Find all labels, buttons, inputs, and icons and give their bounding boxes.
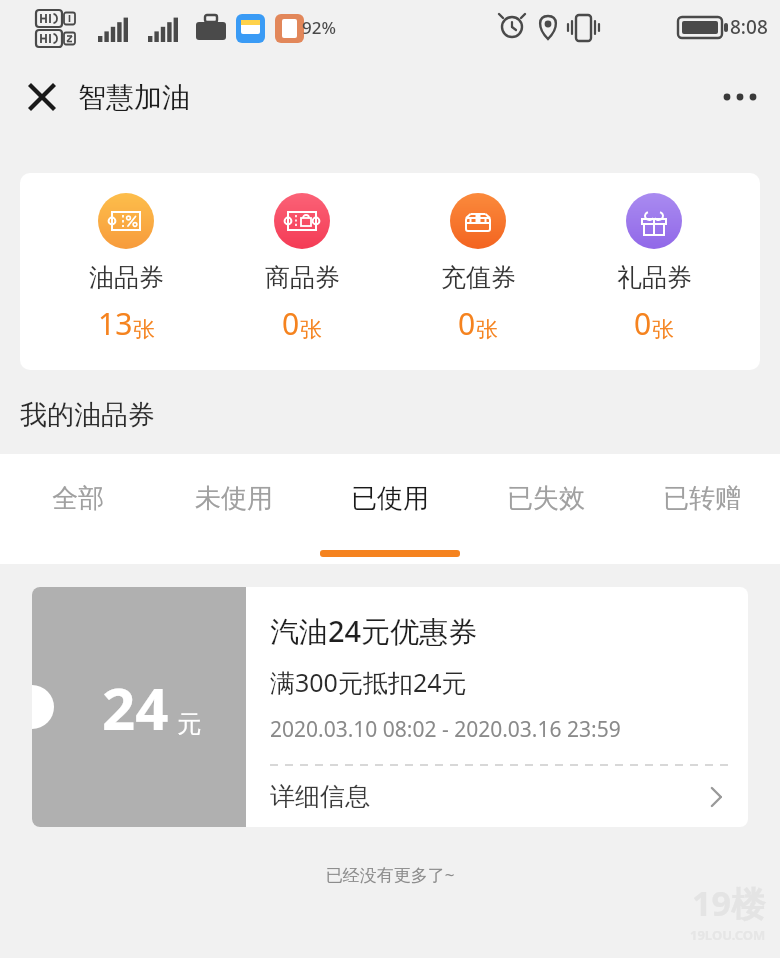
staticText: 智慧加油	[78, 80, 190, 115]
staticText: 满300元抵扣24元	[270, 665, 467, 699]
staticText: 未使用	[195, 482, 273, 515]
staticText: 已使用	[351, 482, 429, 515]
staticText: 92%	[302, 16, 336, 39]
staticText: 礼品券	[617, 262, 692, 293]
button[interactable]: 已转赠	[624, 454, 780, 564]
staticText: 全部	[52, 482, 104, 515]
staticText: 已经没有更多了~	[0, 863, 780, 886]
button[interactable]: 已使用	[312, 454, 468, 564]
staticText: 商品券	[265, 262, 340, 293]
staticText: 充值券	[441, 262, 516, 293]
button[interactable]: 已失效	[468, 454, 624, 564]
staticText: 19楼	[692, 880, 765, 926]
staticText: 0	[282, 303, 300, 344]
staticText: 24	[102, 668, 169, 747]
staticText: 8:08	[730, 14, 768, 40]
button[interactable]: 油品券	[56, 193, 196, 344]
staticText: 汽油24元优惠券	[270, 611, 478, 651]
button[interactable]: 详细信息	[270, 766, 728, 827]
staticText: 张	[652, 316, 674, 344]
staticText: 元	[177, 709, 201, 739]
staticText: 13	[98, 303, 133, 344]
staticText: 张	[300, 316, 322, 344]
staticText: 已失效	[507, 482, 585, 515]
staticText: 油品券	[89, 262, 164, 293]
staticText: 2020.03.10 08:02 - 2020.03.16 23:59	[270, 715, 621, 744]
staticText: 已转赠	[663, 482, 741, 515]
staticText: 0	[458, 303, 476, 344]
button[interactable]: 充值券	[408, 193, 548, 344]
button[interactable]: 未使用	[156, 454, 312, 564]
button[interactable]: 商品券	[232, 193, 372, 344]
staticText: 我的油品券	[20, 398, 155, 432]
staticText: 详细信息	[270, 781, 370, 812]
button[interactable]: 24	[32, 587, 748, 827]
staticText: 0	[634, 303, 652, 344]
button[interactable]: Close	[18, 73, 66, 121]
staticText: 张	[476, 316, 498, 344]
button[interactable]: 全部	[0, 454, 156, 564]
staticText: 19LOU.COM	[690, 926, 766, 944]
button[interactable]: 礼品券	[584, 193, 724, 344]
button[interactable]: More options	[712, 69, 768, 125]
staticText: 张	[133, 316, 155, 344]
